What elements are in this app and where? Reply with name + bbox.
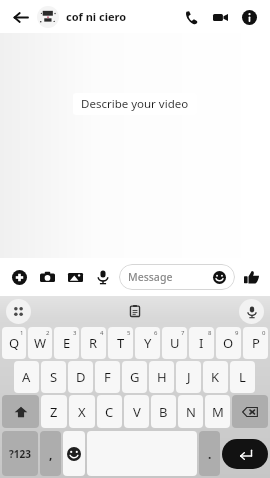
- staticText: .: [208, 446, 212, 462]
- staticText: S: [50, 368, 58, 386]
- staticText: B: [159, 403, 168, 421]
- button[interactable]: ?123: [2, 431, 38, 476]
- button[interactable]: Call: [178, 4, 204, 30]
- staticText: U: [170, 334, 180, 352]
- staticText: Message: [128, 270, 213, 284]
- button[interactable]: Enter: [222, 439, 268, 469]
- button[interactable]: W: [28, 327, 52, 359]
- staticText: 0: [262, 329, 266, 337]
- button[interactable]: Z: [41, 395, 67, 428]
- button[interactable]: Contact photo: [37, 6, 59, 28]
- staticText: I: [199, 334, 204, 352]
- staticText: Y: [144, 334, 152, 352]
- button[interactable]: F: [95, 361, 120, 393]
- button[interactable]: K: [203, 361, 228, 393]
- button[interactable]: A: [14, 361, 39, 393]
- button[interactable]: C: [97, 395, 122, 428]
- staticText: 5: [127, 329, 131, 337]
- staticText: 3: [73, 329, 77, 337]
- staticText: D: [76, 368, 86, 386]
- staticText: F: [104, 368, 111, 386]
- button[interactable]: Add: [7, 265, 31, 289]
- button[interactable]: Message: [119, 264, 235, 290]
- staticText: C: [105, 403, 114, 421]
- staticText: J: [187, 368, 191, 386]
- staticText: L: [239, 368, 246, 386]
- staticText: 2: [46, 329, 50, 337]
- button[interactable]: Voice input: [239, 299, 264, 324]
- button[interactable]: Back: [8, 5, 32, 29]
- staticText: 7: [181, 329, 185, 337]
- staticText: 9: [235, 329, 239, 337]
- button[interactable]: Gallery: [63, 265, 87, 289]
- button[interactable]: Shift: [2, 395, 39, 428]
- staticText: 4: [100, 329, 104, 337]
- staticText: 6: [154, 329, 158, 337]
- button[interactable]: L: [230, 361, 255, 393]
- staticText: H: [157, 368, 167, 386]
- button[interactable]: I: [189, 327, 214, 359]
- button[interactable]: O: [216, 327, 241, 359]
- staticText: T: [117, 334, 125, 352]
- button[interactable]: Video call: [207, 4, 233, 30]
- staticText: 1: [20, 329, 24, 337]
- button[interactable]: T: [108, 327, 133, 359]
- staticText: A: [22, 368, 31, 386]
- staticText: W: [34, 334, 47, 352]
- button[interactable]: B: [151, 395, 176, 428]
- staticText: cof ni ciero: [66, 9, 127, 24]
- staticText: G: [130, 368, 140, 386]
- button[interactable]: Keyboard options: [6, 299, 31, 324]
- staticText: V: [133, 403, 141, 421]
- button[interactable]: H: [149, 361, 174, 393]
- button[interactable]: Camera: [35, 265, 59, 289]
- button[interactable]: Send like: [239, 265, 263, 289]
- staticText: Z: [50, 403, 58, 421]
- button[interactable]: P: [243, 327, 268, 359]
- staticText: ?123: [9, 447, 31, 461]
- staticText: O: [223, 334, 234, 352]
- button[interactable]: D: [68, 361, 93, 393]
- button[interactable]: J: [176, 361, 201, 393]
- staticText: M: [212, 403, 224, 421]
- staticText: ,: [49, 446, 53, 462]
- staticText: X: [78, 403, 86, 421]
- button[interactable]: E: [54, 327, 79, 359]
- button[interactable]: Describe your video: [73, 93, 197, 115]
- staticText: 8: [208, 329, 212, 337]
- button[interactable]: Backspace: [232, 395, 268, 428]
- button[interactable]: G: [122, 361, 147, 393]
- button[interactable]: Clipboard: [124, 300, 146, 322]
- button[interactable]: M: [205, 395, 230, 428]
- button[interactable]: X: [69, 395, 95, 428]
- button[interactable]: R: [81, 327, 106, 359]
- button[interactable]: Y: [135, 327, 160, 359]
- button[interactable]: Details: [236, 4, 262, 30]
- button[interactable]: Q: [2, 327, 26, 359]
- staticText: Q: [9, 334, 20, 352]
- staticText: P: [252, 334, 260, 352]
- staticText: Describe your video: [81, 96, 189, 112]
- button[interactable]: Period: [199, 431, 220, 476]
- button[interactable]: cof ni ciero: [66, 9, 178, 24]
- button[interactable]: V: [124, 395, 149, 428]
- button[interactable]: N: [178, 395, 203, 428]
- staticText: R: [89, 334, 98, 352]
- button[interactable]: Emoji: [63, 431, 85, 476]
- staticText: N: [186, 403, 196, 421]
- button[interactable]: Voice message: [91, 265, 115, 289]
- button[interactable]: U: [162, 327, 187, 359]
- staticText: K: [211, 368, 220, 386]
- button[interactable]: Comma: [40, 431, 61, 476]
- staticText: E: [63, 334, 71, 352]
- button[interactable]: S: [41, 361, 66, 393]
